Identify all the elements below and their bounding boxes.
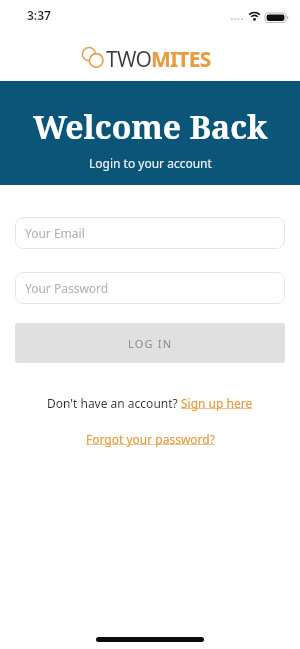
staticText: Don't have an account? [47, 395, 181, 411]
staticText: MITES [151, 45, 211, 74]
staticText: Login to your account [89, 155, 212, 171]
button[interactable]: LOG IN [15, 323, 285, 363]
staticText: Your Password [25, 280, 109, 296]
staticText: LOG IN [128, 336, 173, 351]
button[interactable]: Don't have an account? [47, 395, 253, 411]
staticText: Sign up here [181, 395, 253, 411]
staticText: Forgot your password? [86, 431, 215, 447]
staticText: Welcome Back [33, 105, 268, 149]
button[interactable]: Your Email [15, 217, 285, 249]
staticText: TWO [106, 45, 151, 74]
button[interactable]: Your Password [15, 272, 285, 304]
staticText: Your Email [25, 225, 85, 241]
staticText: 3:37 [27, 7, 51, 23]
button[interactable]: Forgot your password? [86, 431, 215, 447]
